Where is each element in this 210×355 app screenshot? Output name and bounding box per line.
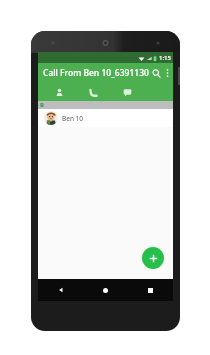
- button[interactable]: Home: [83, 279, 128, 301]
- button[interactable]: Contacts: [42, 83, 76, 101]
- button[interactable]: Back: [38, 279, 83, 301]
- button[interactable]: Add contact: [142, 247, 164, 269]
- button[interactable]: More options: [164, 67, 170, 79]
- staticText: Call From Ben 10_6391130: [43, 67, 149, 79]
- button[interactable]: Messages: [110, 83, 144, 101]
- button[interactable]: Search: [149, 66, 163, 80]
- button[interactable]: Call log: [76, 83, 110, 101]
- button[interactable]: Recents: [128, 279, 173, 301]
- staticText: B: [40, 101, 44, 109]
- button[interactable]: Ben 10: [38, 109, 173, 127]
- staticText: 1:15: [159, 54, 171, 62]
- staticText: Ben 10: [62, 114, 84, 123]
